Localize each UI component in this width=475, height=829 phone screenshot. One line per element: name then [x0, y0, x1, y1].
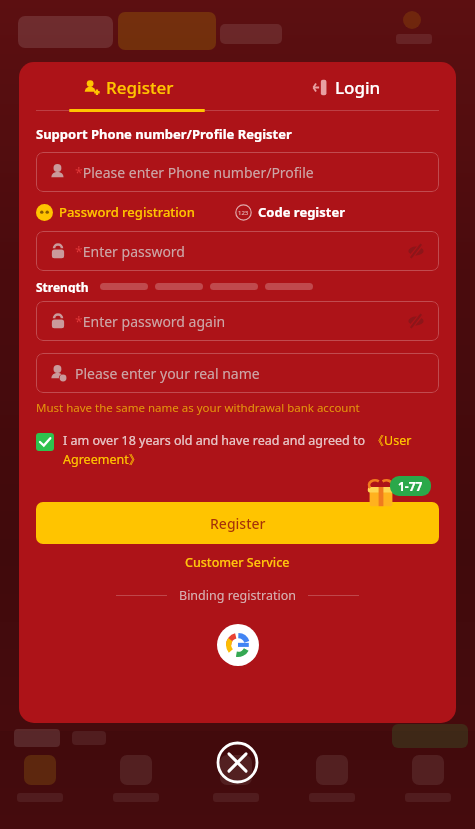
staticText: 1-77	[398, 478, 423, 494]
button[interactable]: Show password	[406, 241, 426, 261]
staticText: Customer Service	[185, 554, 290, 571]
button[interactable]: Register	[36, 502, 439, 544]
staticText: *Please enter Phone number/Profile	[75, 163, 314, 182]
staticText: Code register	[258, 203, 345, 221]
button[interactable]: 123	[235, 203, 345, 221]
button[interactable]: I am over 18 years old and have read and…	[36, 432, 439, 468]
button[interactable]: *Enter password	[36, 231, 439, 271]
button[interactable]: Show password	[406, 311, 426, 331]
staticText: 123	[238, 209, 249, 217]
staticText: Password registration	[59, 203, 195, 221]
staticText: Please enter your real name	[75, 364, 260, 383]
staticText: Support Phone number/Profile Register	[36, 125, 292, 143]
staticText: *Enter password	[75, 242, 185, 261]
staticText: Register	[210, 514, 266, 533]
staticText: I am over 18 years old and have read and…	[63, 432, 439, 468]
button[interactable]: Close	[216, 741, 259, 784]
button[interactable]: Register	[19, 62, 237, 112]
staticText: *Enter password again	[75, 312, 226, 331]
button[interactable]: Customer Service	[36, 554, 439, 571]
button[interactable]: Please enter your real name	[36, 353, 439, 393]
button[interactable]: *Please enter Phone number/Profile	[36, 152, 439, 192]
staticText: Register	[106, 76, 174, 99]
button[interactable]: Login	[237, 62, 456, 112]
button[interactable]: Password registration	[36, 203, 195, 221]
staticText: Strength	[36, 279, 89, 293]
staticText: Binding registration	[179, 587, 296, 604]
staticText: Must have the same name as your withdraw…	[36, 400, 360, 416]
staticText: Login	[335, 76, 381, 99]
button[interactable]: *Enter password again	[36, 301, 439, 341]
button[interactable]: Sign in with Google	[217, 624, 259, 666]
